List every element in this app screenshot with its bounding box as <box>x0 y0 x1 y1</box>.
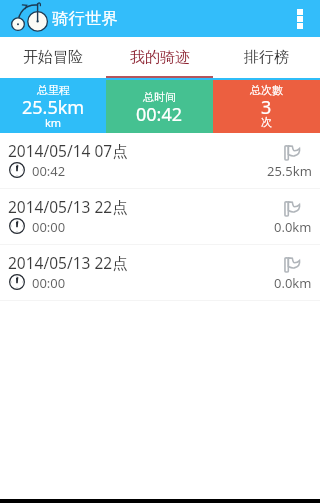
button[interactable]: 总时间 <box>106 80 213 133</box>
button[interactable]: 总里程 <box>0 80 106 133</box>
staticText: 骑行世界 <box>52 8 118 29</box>
staticText: 总时间 <box>143 90 176 104</box>
staticText: 开始冒险 <box>23 48 83 67</box>
staticText: 总次數 <box>250 83 283 97</box>
staticText: 2014/05/14 07点 <box>8 140 128 161</box>
button[interactable]: 2014/05/13 22点 <box>0 245 320 301</box>
staticText: 我的骑迹 <box>130 48 190 67</box>
button[interactable]: 2014/05/14 07点 <box>0 133 320 189</box>
staticText: 2014/05/13 22点 <box>8 196 128 217</box>
staticText: 00:00 <box>32 274 66 292</box>
staticText: 00:42 <box>136 102 183 127</box>
button[interactable]: 总次數 <box>213 80 320 133</box>
staticText: 00:42 <box>32 162 66 180</box>
button[interactable]: 排行榜 <box>213 37 320 78</box>
staticText: 总里程 <box>37 83 70 97</box>
staticText: 25.5km <box>267 162 312 180</box>
staticText: 3 <box>261 95 272 120</box>
staticText: 次 <box>261 115 272 129</box>
staticText: 00:00 <box>32 218 66 236</box>
staticText: 2014/05/13 22点 <box>8 252 128 273</box>
staticText: 0.0km <box>274 218 312 236</box>
button[interactable]: 我的骑迹 <box>106 37 213 78</box>
staticText: 排行榜 <box>244 48 289 67</box>
button[interactable]: 开始冒险 <box>0 37 106 78</box>
staticText: 25.5km <box>22 95 85 120</box>
staticText: km <box>45 115 62 130</box>
button[interactable]: More options <box>282 1 318 37</box>
staticText: 0.0km <box>274 274 312 292</box>
button[interactable]: 2014/05/13 22点 <box>0 189 320 245</box>
